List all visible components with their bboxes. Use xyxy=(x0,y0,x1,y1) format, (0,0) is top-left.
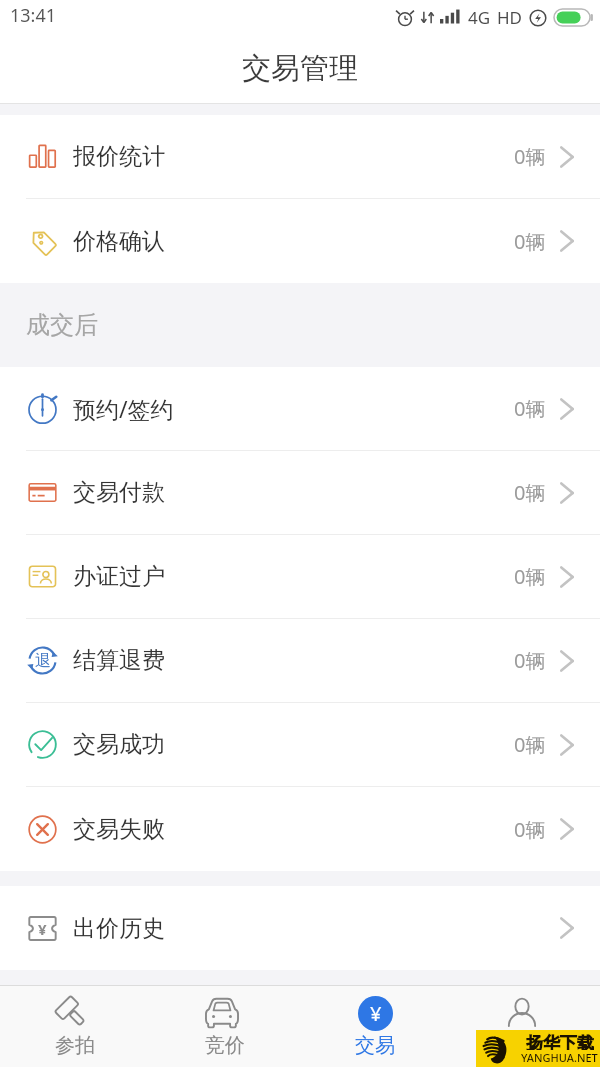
staticText: 0辆 xyxy=(514,228,546,255)
staticText: 0辆 xyxy=(514,647,546,674)
button[interactable]: 办证过户 xyxy=(0,535,600,618)
button[interactable]: 竞价 xyxy=(150,986,300,1067)
button[interactable]: 参拍 xyxy=(0,986,150,1067)
button[interactable]: ¥ xyxy=(0,886,600,970)
staticText: 0辆 xyxy=(514,816,546,843)
staticText: 交易 xyxy=(355,1033,395,1058)
button[interactable]: ¥ xyxy=(300,986,450,1067)
staticText: HD xyxy=(497,6,523,29)
staticText: YANGHUA.NET xyxy=(521,1050,598,1063)
staticText: 13:41 xyxy=(10,3,57,28)
staticText: 4G xyxy=(468,6,491,29)
staticText: 交易成功 xyxy=(73,730,165,759)
staticText: 我的 xyxy=(505,1033,545,1058)
button[interactable]: 交易付款 xyxy=(0,451,600,534)
staticText: 0辆 xyxy=(514,143,546,170)
staticText: 结算退费 xyxy=(73,646,165,675)
button[interactable]: 交易失败 xyxy=(0,787,600,871)
staticText: 价格确认 xyxy=(73,227,165,256)
staticText: 参拍 xyxy=(55,1033,95,1058)
staticText: 0辆 xyxy=(514,395,546,422)
button[interactable]: 预约/签约 xyxy=(0,367,600,450)
staticText: ¥ xyxy=(38,919,47,939)
staticText: 0辆 xyxy=(514,479,546,506)
staticText: 出价历史 xyxy=(73,914,165,943)
staticText: 退 xyxy=(35,651,51,671)
staticText: 扬华下载 xyxy=(526,1033,594,1050)
staticText: 交易失败 xyxy=(73,815,165,844)
staticText: ¥ xyxy=(370,1000,382,1027)
staticText: 报价统计 xyxy=(73,142,165,171)
staticText: 0辆 xyxy=(514,563,546,590)
button[interactable]: 价格确认 xyxy=(0,199,600,283)
staticText: 0辆 xyxy=(514,731,546,758)
staticText: 交易付款 xyxy=(73,478,165,507)
staticText: 办证过户 xyxy=(73,562,165,591)
staticText: 预约/签约 xyxy=(73,393,174,424)
button[interactable]: 退 xyxy=(0,619,600,702)
button[interactable]: 交易成功 xyxy=(0,703,600,786)
staticText: 成交后 xyxy=(26,310,98,340)
button[interactable]: 我的 xyxy=(450,986,600,1067)
staticText: 交易管理 xyxy=(242,50,358,87)
button[interactable]: 报价统计 xyxy=(0,115,600,198)
staticText: 竞价 xyxy=(205,1033,245,1058)
